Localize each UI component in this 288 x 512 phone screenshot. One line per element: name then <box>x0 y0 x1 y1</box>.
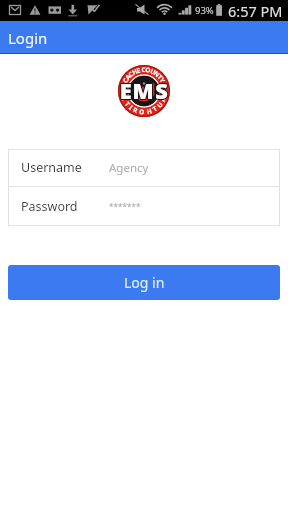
staticText: 93% <box>195 4 214 17</box>
button[interactable]: Password <box>8 187 280 226</box>
staticText: 6:57 PM <box>228 1 283 21</box>
staticText: ******* <box>109 201 141 212</box>
staticText: Agency <box>109 160 149 176</box>
staticText: Login <box>8 28 48 48</box>
button[interactable]: Log in <box>8 265 280 300</box>
staticText: Password <box>21 198 78 215</box>
button[interactable]: Username <box>8 149 280 186</box>
staticText: Username <box>21 159 82 176</box>
staticText: Log in <box>124 273 165 292</box>
other: Cache County EMS Authority logo <box>118 65 170 117</box>
